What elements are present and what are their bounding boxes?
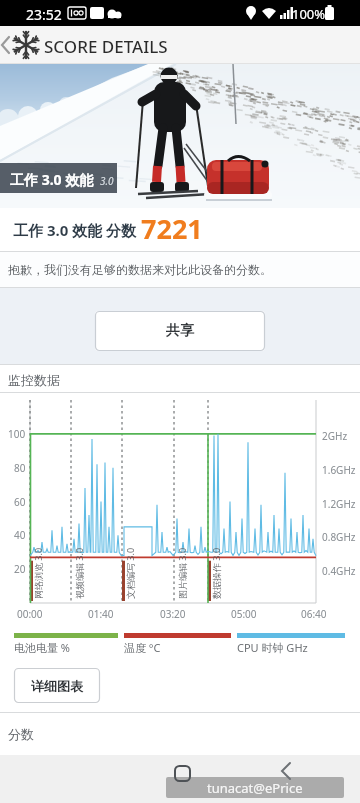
staticText: CPU 时钟 GHz (237, 640, 308, 655)
staticText: 分数 (8, 726, 34, 742)
button[interactable]: SCORE DETAILS (0, 26, 360, 64)
staticText: SCORE DETAILS (44, 35, 168, 58)
button[interactable]: 详细图表 (14, 668, 100, 703)
staticText: 23:52 (26, 5, 62, 24)
staticText: 工作 3.0 效能 分数 (13, 220, 137, 240)
button[interactable] (173, 764, 193, 784)
staticText: 监控数据 (8, 372, 60, 388)
staticText: 抱歉，我们没有足够的数据来对比此设备的分数。 (8, 262, 272, 277)
button[interactable]: 共享 (95, 311, 265, 351)
staticText: tunacat@ePrice (207, 779, 303, 797)
staticText: 工作 3.0 效能 (10, 170, 94, 189)
staticText: 7221 (141, 210, 203, 247)
staticText: 详细图表 (31, 678, 83, 694)
staticText: 温度 °C (124, 640, 161, 655)
button[interactable] (278, 762, 296, 780)
staticText: 电池电量 % (14, 640, 71, 655)
staticText: 100% (292, 5, 326, 23)
staticText: 3.0 (100, 174, 114, 188)
staticText: 共享 (166, 322, 194, 340)
